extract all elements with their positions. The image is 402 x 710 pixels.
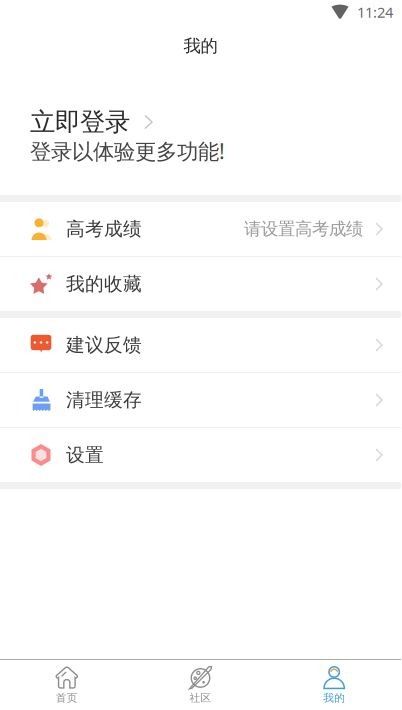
button[interactable]: 立即登录 [0, 68, 401, 195]
button[interactable]: 高考成绩 [0, 202, 401, 256]
button[interactable]: 建议反馈 [0, 318, 401, 372]
button[interactable]: 我的收藏 [0, 257, 401, 311]
button[interactable]: 首页 [0, 659, 134, 710]
button[interactable]: 我的 [267, 659, 401, 710]
staticText: 设置 [66, 443, 104, 466]
staticText: 11:24 [357, 2, 393, 22]
staticText: 立即登录 [30, 106, 130, 137]
button[interactable]: 设置 [0, 428, 401, 482]
staticText: 我的 [323, 691, 345, 705]
staticText: 社区 [189, 691, 211, 705]
staticText: 清理缓存 [66, 388, 142, 411]
staticText: 请设置高考成绩 [244, 218, 363, 240]
staticText: 我的 [183, 35, 217, 57]
button[interactable]: 社区 [134, 659, 267, 710]
staticText: 首页 [56, 691, 78, 705]
staticText: 我的收藏 [66, 272, 142, 295]
staticText: 建议反馈 [66, 333, 142, 356]
button[interactable]: 清理缓存 [0, 373, 401, 427]
staticText: 登录以体验更多功能! [30, 137, 225, 165]
staticText: 高考成绩 [66, 217, 142, 240]
